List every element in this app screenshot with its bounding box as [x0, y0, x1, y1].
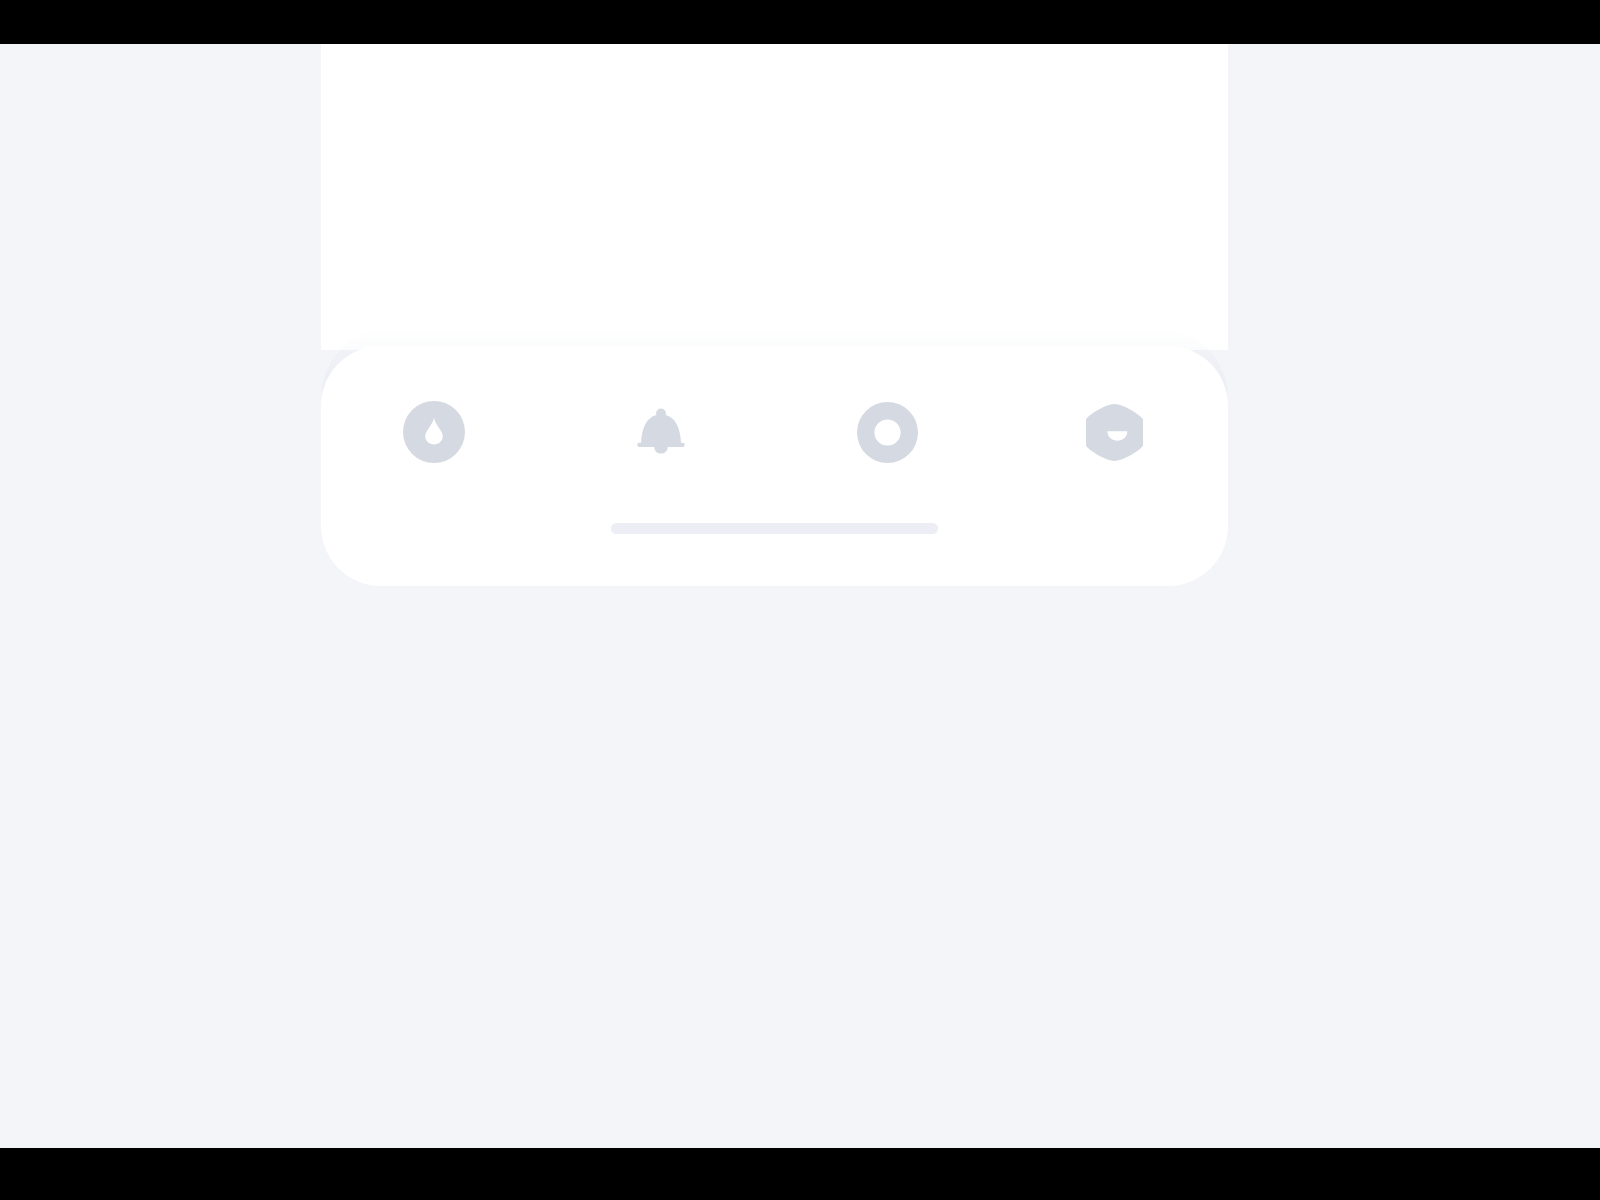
- button[interactable]: Activity: [774, 358, 1001, 506]
- button[interactable]: Notifications: [547, 358, 774, 506]
- button[interactable]: Profile: [1001, 358, 1228, 506]
- button[interactable]: Hydration: [321, 358, 547, 506]
